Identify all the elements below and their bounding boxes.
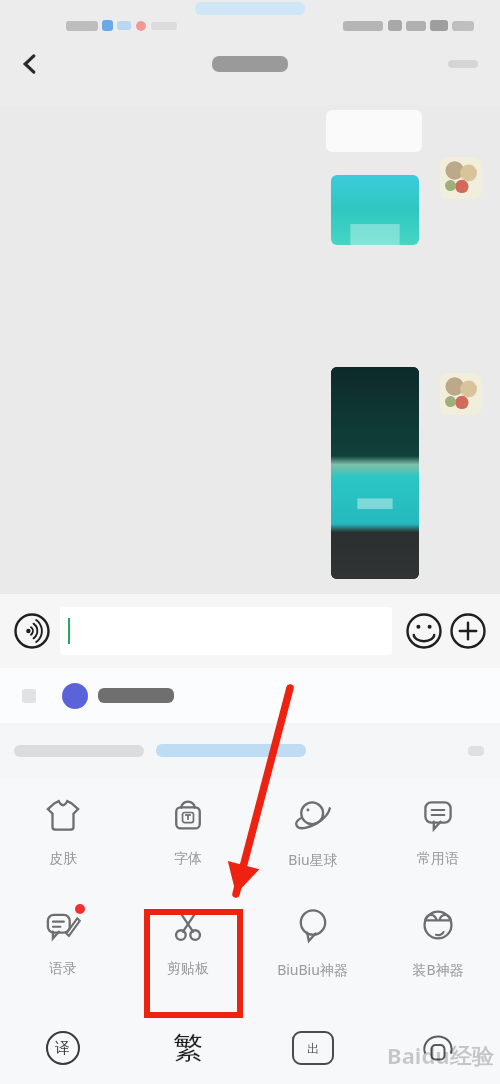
staticText: 繁 — [173, 1029, 203, 1067]
button[interactable]: Translate — [0, 1012, 125, 1084]
button[interactable]: 剪贴板 — [125, 888, 250, 998]
staticText: 装B神器 — [412, 960, 464, 979]
staticText: 字体 — [174, 850, 202, 868]
button[interactable]: Emoji — [402, 609, 446, 653]
button[interactable]: 繁 — [125, 1012, 250, 1084]
staticText: 常用语 — [417, 850, 459, 868]
staticText: BiuBiu神器 — [277, 960, 348, 979]
button[interactable]: Profile — [375, 1012, 500, 1084]
staticText: Baidu经验 — [387, 1040, 494, 1070]
button[interactable]: More — [446, 609, 490, 653]
button[interactable]: 装B神器 — [375, 888, 500, 998]
staticText: 语录 — [49, 960, 77, 978]
button[interactable]: 语录 — [0, 888, 125, 998]
staticText: Biu星球 — [288, 850, 338, 869]
button[interactable]: Biu星球 — [250, 778, 375, 888]
button[interactable]: 皮肤 — [0, 778, 125, 888]
button[interactable]: BiuBiu神器 — [250, 888, 375, 998]
staticText: 译 — [55, 1039, 70, 1058]
button[interactable]: 字体 — [125, 778, 250, 888]
button[interactable]: Hide keyboard — [250, 1012, 375, 1084]
button[interactable]: Back — [6, 40, 54, 88]
button[interactable]: 常用语 — [375, 778, 500, 888]
staticText: 剪贴板 — [167, 960, 209, 978]
button[interactable] — [60, 607, 392, 655]
staticText: 皮肤 — [49, 850, 77, 868]
button[interactable]: Voice input — [10, 609, 54, 653]
staticText: 出 — [307, 1041, 319, 1056]
